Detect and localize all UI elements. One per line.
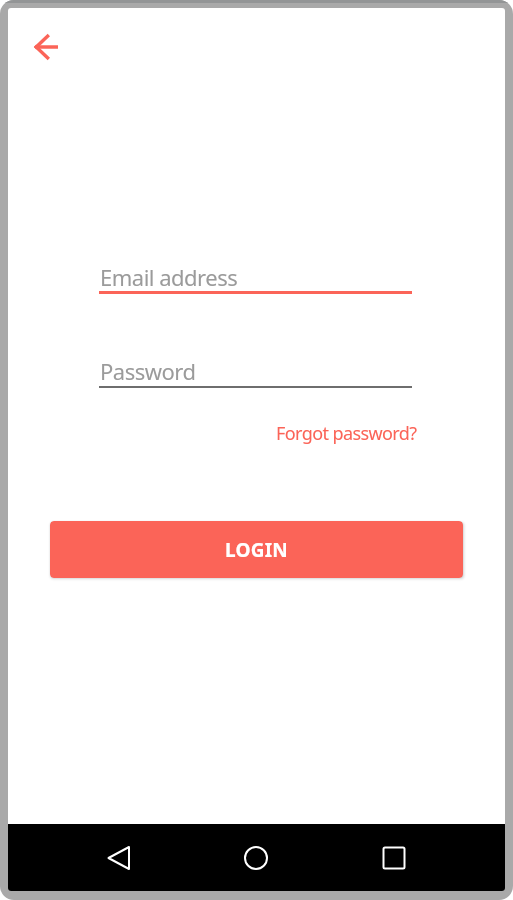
button[interactable]: Email address: [99, 256, 412, 294]
button[interactable]: LOGIN: [50, 521, 463, 578]
button[interactable]: [23, 23, 71, 71]
staticText: LOGIN: [225, 537, 288, 563]
button[interactable]: [232, 834, 280, 882]
staticText: Email address: [100, 262, 238, 292]
button[interactable]: [370, 834, 418, 882]
button[interactable]: [94, 834, 142, 882]
staticText: Password: [100, 356, 196, 386]
button[interactable]: Forgot password?: [276, 421, 417, 446]
staticText: Forgot password?: [276, 421, 417, 446]
button[interactable]: Password: [99, 350, 412, 388]
